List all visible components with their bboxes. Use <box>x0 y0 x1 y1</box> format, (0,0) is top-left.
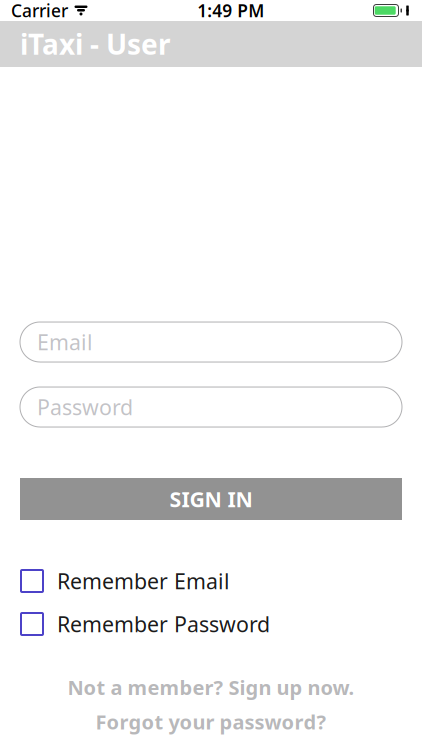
button[interactable]: Remember Email <box>21 568 401 594</box>
staticText: Remember Password <box>57 610 270 638</box>
staticText: Password <box>37 393 133 421</box>
button[interactable]: Not a member? Sign up now. <box>0 674 422 701</box>
staticText: Carrier <box>11 0 68 22</box>
staticText: iTaxi - User <box>20 25 171 63</box>
button[interactable]: Forgot your password? <box>0 709 422 735</box>
staticText: Remember Email <box>57 567 230 595</box>
staticText: Email <box>37 328 93 356</box>
staticText: Forgot your password? <box>95 709 326 735</box>
staticText: 1:49 PM <box>197 0 264 22</box>
button[interactable]: SIGN IN <box>20 478 402 520</box>
staticText: Not a member? Sign up now. <box>67 674 354 701</box>
button[interactable]: Remember Password <box>21 611 401 637</box>
staticText: SIGN IN <box>169 485 252 513</box>
